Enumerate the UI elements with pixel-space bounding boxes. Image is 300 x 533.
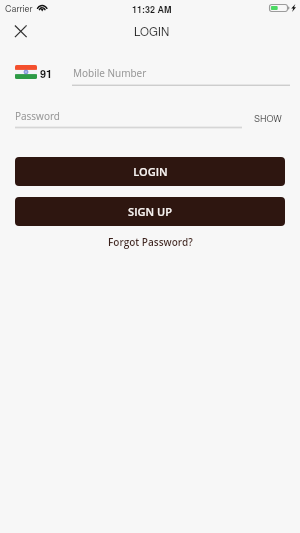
staticText: Mobile Number [73, 66, 147, 80]
staticText: 11:32 AM [132, 3, 172, 16]
staticText: LOGIN [134, 23, 170, 39]
staticText: LOGIN [133, 164, 168, 179]
staticText: SIGN UP [128, 204, 172, 219]
staticText: Carrier [5, 2, 33, 15]
button[interactable]: LOGIN [15, 157, 285, 186]
staticText: Forgot Password? [108, 235, 193, 249]
staticText: 91 [40, 66, 53, 82]
staticText: SHOW [254, 112, 282, 125]
button[interactable]: SIGN UP [15, 197, 285, 226]
button[interactable]: SHOW [249, 108, 287, 129]
staticText: Password [15, 109, 60, 123]
button[interactable]: Close [4, 14, 28, 38]
button[interactable]: Forgot Password? [102, 231, 199, 253]
